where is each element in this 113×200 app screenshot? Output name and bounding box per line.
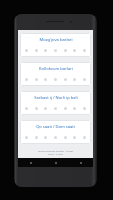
button[interactable]: option <box>44 49 47 52</box>
button[interactable]: option <box>83 107 86 110</box>
button[interactable]: option <box>83 136 86 139</box>
button[interactable]: Kollokvum barlari <box>20 62 91 86</box>
button[interactable]: option <box>25 78 28 81</box>
button[interactable]: Back <box>27 159 34 166</box>
button[interactable]: option <box>73 49 76 52</box>
button[interactable]: option <box>64 49 67 52</box>
button[interactable]: option <box>64 78 67 81</box>
button[interactable]: option <box>54 136 57 139</box>
button[interactable]: option <box>44 78 47 81</box>
staticText: Ilmim bo'yicha darslar · 2 soat <box>18 149 93 152</box>
button[interactable]: option <box>35 107 38 110</box>
button[interactable]: option <box>35 49 38 52</box>
button[interactable]: option <box>25 49 28 52</box>
staticText: 2024 · 4 soat <box>18 152 93 155</box>
button[interactable]: option <box>73 78 76 81</box>
staticText: Qo saati / Dam saati <box>36 124 75 130</box>
button[interactable]: option <box>25 107 28 110</box>
button[interactable]: option <box>64 136 67 139</box>
button[interactable]: option <box>73 136 76 139</box>
button[interactable]: option <box>83 49 86 52</box>
button[interactable]: option <box>54 107 57 110</box>
button[interactable]: option <box>35 136 38 139</box>
button[interactable]: Qo saati / Dam saati <box>20 120 91 144</box>
button[interactable]: option <box>54 49 57 52</box>
button[interactable]: Mozg'jova barlari <box>20 33 91 57</box>
staticText: Sarbast ij / Nurli ip bali <box>34 95 78 101</box>
button[interactable]: option <box>54 78 57 81</box>
button[interactable]: option <box>35 78 38 81</box>
button[interactable]: option <box>83 78 86 81</box>
button[interactable]: option <box>25 136 28 139</box>
button[interactable]: Home <box>52 159 59 166</box>
button[interactable]: option <box>64 107 67 110</box>
staticText: Mozg'jova barlari <box>39 37 73 43</box>
staticText: Kollokvum barlari <box>39 66 73 72</box>
button[interactable]: option <box>73 107 76 110</box>
button[interactable]: Sarbast ij / Nurli ip bali <box>20 91 91 115</box>
button[interactable]: Recent apps <box>77 159 84 166</box>
button[interactable]: option <box>44 107 47 110</box>
button[interactable]: option <box>44 136 47 139</box>
